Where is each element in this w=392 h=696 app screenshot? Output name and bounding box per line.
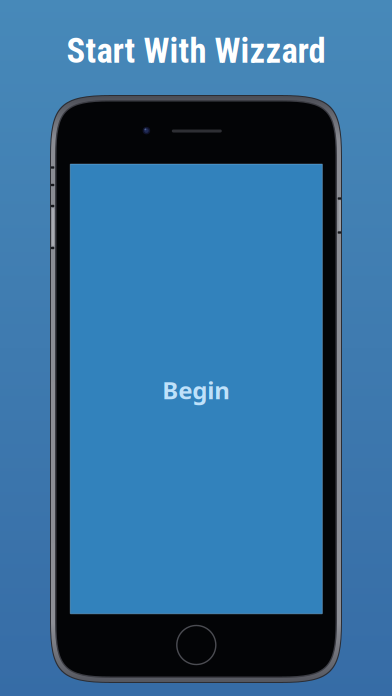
staticText: Begin bbox=[162, 374, 230, 406]
button[interactable]: Begin bbox=[70, 164, 322, 614]
staticText: Start With Wizzard bbox=[66, 31, 325, 71]
